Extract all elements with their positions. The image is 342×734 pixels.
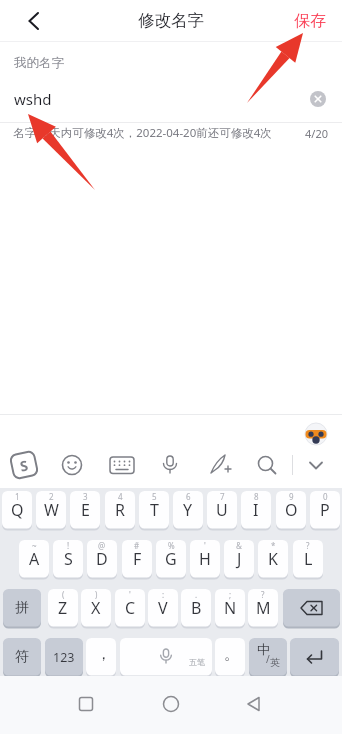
staticText: Z bbox=[58, 597, 68, 619]
button[interactable] bbox=[56, 449, 88, 481]
button[interactable]: C bbox=[115, 589, 145, 627]
staticText: # bbox=[134, 540, 140, 551]
button[interactable]: S bbox=[9, 450, 39, 480]
button[interactable]: 保存 bbox=[288, 5, 332, 37]
button[interactable]: U bbox=[207, 491, 237, 529]
button[interactable]: A bbox=[19, 540, 49, 578]
button[interactable] bbox=[303, 421, 329, 447]
staticText: 8 bbox=[254, 491, 259, 502]
staticText: ' bbox=[204, 540, 206, 551]
button[interactable] bbox=[0, 0, 56, 41]
button[interactable]: 符 bbox=[3, 638, 41, 676]
button[interactable]: P bbox=[310, 491, 340, 529]
staticText: 123 bbox=[53, 649, 75, 666]
button[interactable] bbox=[283, 589, 340, 627]
button[interactable]: 中 bbox=[249, 638, 287, 676]
staticText: 2 bbox=[49, 491, 54, 502]
button[interactable] bbox=[154, 449, 186, 481]
staticText: K bbox=[268, 548, 278, 570]
staticText: 保存 bbox=[294, 11, 326, 31]
staticText: R bbox=[115, 499, 125, 521]
staticText: S bbox=[64, 548, 73, 570]
staticText: L bbox=[304, 548, 313, 570]
staticText: 4/20 bbox=[305, 126, 328, 141]
staticText: 6 bbox=[186, 491, 191, 502]
staticText: 名字30天内可修改4次，2022-04-20前还可修改4次 bbox=[13, 125, 272, 141]
button[interactable]: 五笔 bbox=[120, 638, 212, 676]
staticText: ) bbox=[95, 589, 98, 600]
button[interactable]: X bbox=[81, 589, 111, 627]
button[interactable]: Y bbox=[173, 491, 203, 529]
button[interactable]: I bbox=[241, 491, 271, 529]
button[interactable]: 123 bbox=[45, 638, 83, 676]
button[interactable]: G bbox=[156, 540, 186, 578]
staticText: 英 bbox=[270, 656, 280, 669]
staticText: S bbox=[18, 455, 30, 476]
staticText: & bbox=[236, 540, 242, 551]
button[interactable]: T bbox=[139, 491, 169, 529]
staticText: 9 bbox=[289, 491, 294, 502]
button[interactable] bbox=[203, 449, 235, 481]
staticText: J bbox=[237, 548, 242, 570]
staticText: V bbox=[158, 597, 168, 619]
button[interactable] bbox=[300, 449, 332, 481]
staticText: ( bbox=[62, 589, 65, 600]
staticText: % bbox=[168, 540, 175, 551]
staticText: B bbox=[191, 597, 202, 619]
staticText: ; bbox=[229, 589, 232, 600]
button[interactable]: 。 bbox=[215, 638, 245, 676]
staticText: ? bbox=[261, 589, 265, 600]
button[interactable]: R bbox=[105, 491, 135, 529]
staticText: 拼 bbox=[15, 599, 29, 617]
staticText: P bbox=[320, 499, 330, 521]
button[interactable]: H bbox=[190, 540, 220, 578]
staticText: / bbox=[266, 652, 270, 666]
staticText: 0 bbox=[323, 491, 328, 502]
staticText: : bbox=[162, 589, 165, 600]
staticText: U bbox=[216, 499, 228, 521]
button[interactable]: 拼 bbox=[3, 589, 41, 627]
staticText: 修改名字 bbox=[138, 10, 204, 31]
button[interactable]: L bbox=[293, 540, 323, 578]
button[interactable]: F bbox=[122, 540, 152, 578]
staticText: . bbox=[195, 589, 198, 600]
button[interactable]: wshd bbox=[0, 84, 342, 114]
staticText: 7 bbox=[220, 491, 225, 502]
button[interactable]: ， bbox=[86, 638, 116, 676]
button[interactable]: O bbox=[276, 491, 306, 529]
button[interactable]: J bbox=[224, 540, 254, 578]
button[interactable] bbox=[151, 684, 191, 724]
staticText: * bbox=[271, 540, 276, 551]
button[interactable] bbox=[234, 684, 274, 724]
button[interactable]: S bbox=[53, 540, 83, 578]
staticText: ? bbox=[306, 540, 310, 551]
staticText: ， bbox=[96, 645, 111, 664]
button[interactable] bbox=[66, 684, 106, 724]
staticText: N bbox=[224, 597, 237, 619]
staticText: wshd bbox=[14, 89, 52, 109]
staticText: Y bbox=[183, 499, 193, 521]
staticText: ' bbox=[129, 589, 131, 600]
button[interactable]: W bbox=[36, 491, 66, 529]
button[interactable] bbox=[251, 449, 283, 481]
button[interactable]: Q bbox=[2, 491, 32, 529]
staticText: @ bbox=[98, 540, 106, 551]
staticText: 中 bbox=[257, 641, 270, 657]
button[interactable]: N bbox=[215, 589, 245, 627]
button[interactable] bbox=[290, 638, 339, 676]
staticText: W bbox=[44, 499, 59, 521]
button[interactable]: K bbox=[258, 540, 288, 578]
button[interactable]: E bbox=[70, 491, 100, 529]
button[interactable] bbox=[306, 87, 330, 111]
staticText: 符 bbox=[15, 648, 29, 666]
staticText: C bbox=[125, 597, 136, 619]
button[interactable]: D bbox=[87, 540, 117, 578]
button[interactable]: B bbox=[181, 589, 211, 627]
button[interactable]: V bbox=[148, 589, 178, 627]
button[interactable]: Z bbox=[48, 589, 78, 627]
staticText: ! bbox=[67, 540, 70, 551]
staticText: A bbox=[29, 548, 40, 570]
staticText: 4 bbox=[118, 491, 123, 502]
button[interactable] bbox=[106, 449, 138, 481]
button[interactable]: M bbox=[248, 589, 278, 627]
